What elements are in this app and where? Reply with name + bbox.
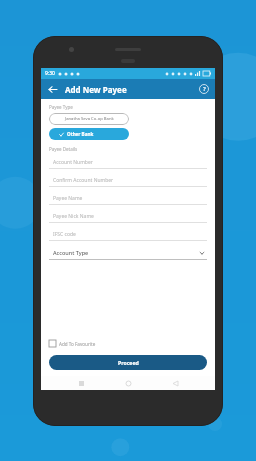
staticText: Account Type xyxy=(53,249,89,256)
staticText: Payee Name xyxy=(53,195,83,202)
button[interactable]: IFSC code xyxy=(49,228,207,246)
button[interactable]: Janatha Seva Co-op Bank xyxy=(49,113,129,125)
staticText: Payee Type xyxy=(49,104,73,110)
button[interactable]: Back xyxy=(45,82,59,96)
staticText: 9:30 xyxy=(45,70,55,77)
staticText: Payee Details xyxy=(49,146,78,152)
staticText: Proceed xyxy=(118,359,139,366)
button[interactable]: Recents xyxy=(74,376,88,390)
button[interactable]: Payee Nick Name xyxy=(49,210,207,228)
button[interactable]: Proceed xyxy=(49,355,207,370)
button[interactable]: Account Type xyxy=(49,246,207,260)
button[interactable]: Other Bank xyxy=(49,128,129,140)
button[interactable]: Payee Name xyxy=(49,192,207,210)
button[interactable]: Account Number xyxy=(49,156,207,174)
staticText: Janatha Seva Co-op Bank xyxy=(65,116,114,122)
button[interactable]: Home xyxy=(121,376,135,390)
staticText: Other Bank xyxy=(67,131,94,137)
staticText: ? xyxy=(203,85,206,93)
button[interactable]: Add To Favourite xyxy=(49,338,96,349)
button[interactable]: Confirm Account Number xyxy=(49,174,207,192)
button[interactable]: Back xyxy=(168,376,182,390)
staticText: Add New Payee xyxy=(65,84,127,95)
button[interactable]: Help xyxy=(197,82,211,96)
staticText: Add To Favourite xyxy=(59,341,96,347)
staticText: Confirm Account Number xyxy=(53,177,114,184)
staticText: Payee Nick Name xyxy=(53,213,94,220)
staticText: IFSC code xyxy=(53,231,76,238)
staticText: Account Number xyxy=(53,159,93,166)
